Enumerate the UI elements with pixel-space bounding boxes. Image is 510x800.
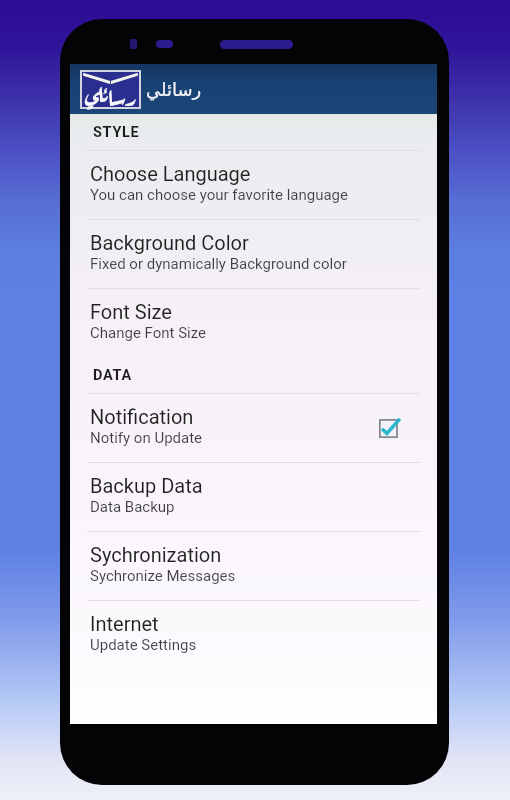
staticText: رسائلي [146, 79, 202, 100]
staticText: Internet [90, 612, 159, 635]
button[interactable]: Notification toggle [377, 415, 403, 441]
button[interactable]: Background Color [70, 220, 437, 289]
button[interactable]: Backup Data [70, 463, 437, 532]
staticText: Sychronize Messages [90, 567, 236, 585]
button[interactable]: Choose Language [70, 151, 437, 220]
button[interactable]: Notification [70, 394, 437, 463]
staticText: Fixed or dynamically Background color [90, 255, 347, 273]
staticText: Backup Data [90, 474, 203, 497]
staticText: Choose Language [90, 162, 251, 185]
staticText: Notify on Update [90, 429, 203, 447]
staticText: Font Size [90, 300, 172, 323]
other: App logo [82, 72, 139, 107]
staticText: You can choose your favorite language [90, 186, 348, 204]
staticText: Sychronization [90, 543, 222, 566]
staticText: STYLE [93, 124, 140, 141]
staticText: DATA [93, 367, 132, 384]
staticText: Update Settings [90, 636, 197, 654]
staticText: رسائلي [85, 78, 137, 112]
staticText: Data Backup [90, 498, 175, 516]
staticText: Change Font Size [90, 324, 207, 342]
button[interactable]: Font Size [70, 289, 437, 357]
button[interactable]: Internet [70, 601, 437, 669]
staticText: Notification [90, 405, 194, 428]
button[interactable]: Sychronization [70, 532, 437, 601]
staticText: Background Color [90, 231, 249, 254]
